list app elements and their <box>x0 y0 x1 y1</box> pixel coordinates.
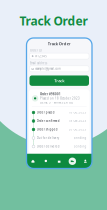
staticText: Track Order <box>19 13 87 29</box>
button[interactable]: Search <box>40 154 53 169</box>
staticText: #12345 <box>35 54 47 58</box>
staticText: Order placed <box>37 111 55 114</box>
staticText: Order delivered <box>37 145 60 148</box>
staticText: Items: 3 · Arrives 24 Oct <box>40 101 73 104</box>
button[interactable]: Orders <box>66 154 79 169</box>
staticText: Track Order <box>48 41 71 46</box>
staticText: Email address <box>30 61 47 65</box>
button[interactable]: Home <box>26 154 40 169</box>
button[interactable]: Profile <box>79 154 92 169</box>
staticText: example@gmail.com <box>35 67 60 71</box>
staticText: Order confirmed <box>37 119 60 123</box>
staticText: Order ID <box>30 49 42 52</box>
staticText: 18 Oct 2023 <box>69 119 87 123</box>
staticText: pending <box>74 136 87 140</box>
button[interactable]: Track <box>29 75 89 86</box>
staticText: Order shipped <box>37 128 58 131</box>
staticText: Order #98001 <box>40 92 61 96</box>
staticText: pending <box>74 145 87 148</box>
button[interactable]: Cart <box>53 154 66 169</box>
staticText: Placed on 18 October 2023 <box>40 97 80 100</box>
staticText: 20 Oct 2023 <box>69 128 87 131</box>
staticText: Out for delivery <box>37 136 59 140</box>
staticText: 18 Oct 2023 <box>69 111 87 114</box>
staticText: Track <box>54 78 64 83</box>
